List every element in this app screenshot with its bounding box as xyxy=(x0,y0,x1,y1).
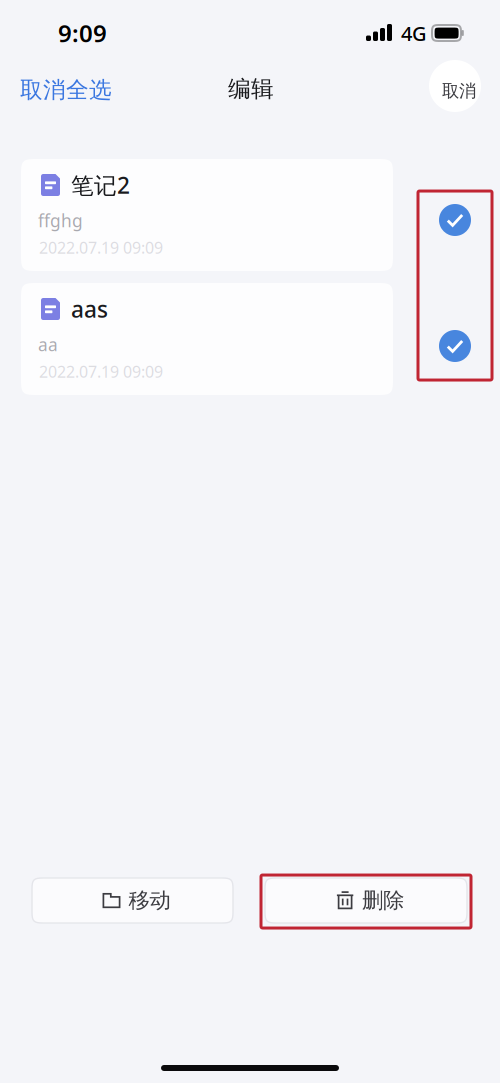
staticText: 2022.07.19 09:09 xyxy=(39,237,163,258)
staticText: 9:09 xyxy=(58,17,107,49)
button[interactable]: 取消 xyxy=(429,60,481,112)
staticText: ffghg xyxy=(38,209,83,232)
button[interactable]: 删除 xyxy=(265,878,467,923)
staticText: 移动 xyxy=(128,887,170,914)
staticText: 4G xyxy=(401,20,427,47)
button[interactable]: Selected xyxy=(439,330,471,362)
button[interactable]: 移动 xyxy=(32,878,233,923)
staticText: aas xyxy=(71,294,108,324)
button[interactable]: 笔记2 xyxy=(21,159,393,271)
staticText: 取消全选 xyxy=(20,76,112,104)
staticText: 删除 xyxy=(362,887,404,914)
staticText: 编辑 xyxy=(228,75,274,103)
button[interactable]: 取消全选 xyxy=(16,70,116,110)
staticText: 取消 xyxy=(442,80,476,102)
button[interactable]: aas xyxy=(21,283,393,395)
button[interactable]: Selected xyxy=(439,204,471,236)
staticText: 2022.07.19 09:09 xyxy=(39,361,163,382)
staticText: aa xyxy=(38,333,58,356)
staticText: 笔记2 xyxy=(71,170,130,200)
